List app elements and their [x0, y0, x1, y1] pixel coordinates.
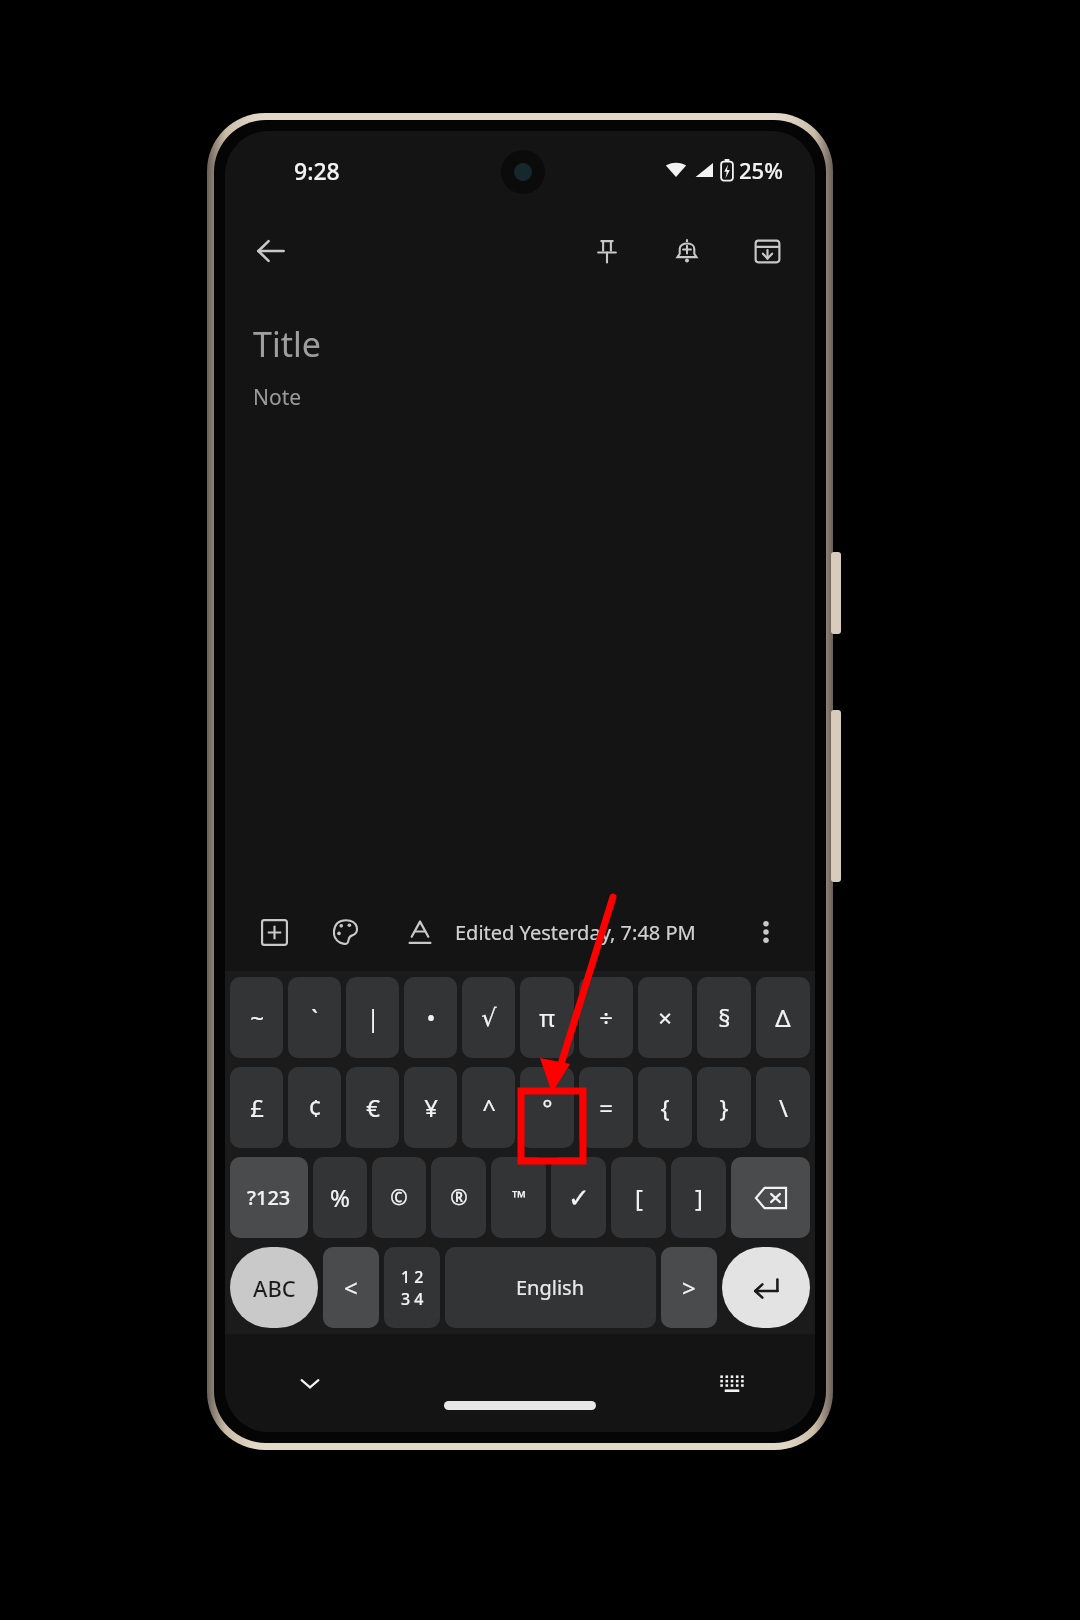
staticText: |	[366, 1001, 380, 1034]
button[interactable]: Colour	[319, 905, 373, 959]
staticText: ^	[482, 1091, 496, 1124]
button[interactable]: ¢	[288, 1067, 341, 1148]
button[interactable]: §	[697, 977, 751, 1058]
staticText: 9:28	[294, 155, 340, 186]
staticText: §	[718, 1001, 731, 1034]
button[interactable]: Formatting	[393, 905, 447, 959]
staticText: ?123	[247, 1184, 291, 1211]
staticText: =	[599, 1091, 613, 1124]
button[interactable]: More options	[739, 905, 793, 959]
staticText: ]	[695, 1181, 703, 1214]
button[interactable]: ™	[491, 1157, 546, 1238]
staticText: °	[542, 1091, 553, 1124]
staticText: ¢	[308, 1091, 322, 1124]
button[interactable]: 1 2	[384, 1247, 440, 1328]
button[interactable]: {	[638, 1067, 692, 1148]
button[interactable]: `	[288, 977, 341, 1058]
staticText: %	[330, 1181, 350, 1214]
button[interactable]: ABC	[230, 1247, 318, 1328]
button[interactable]: |	[346, 977, 399, 1058]
staticText: \	[779, 1091, 788, 1124]
staticText: ~	[250, 1001, 264, 1034]
button[interactable]: ¥	[404, 1067, 457, 1148]
button[interactable]: }	[697, 1067, 751, 1148]
button[interactable]: √	[462, 977, 515, 1058]
staticText: <	[344, 1271, 358, 1304]
button[interactable]: Backspace	[731, 1157, 810, 1238]
button[interactable]: Change keyboard	[707, 1358, 757, 1408]
button[interactable]: ©	[372, 1157, 426, 1238]
staticText: €	[366, 1091, 380, 1124]
staticText: [	[635, 1181, 643, 1214]
staticText: Edited Yesterday, 7:48 PM	[455, 919, 696, 946]
staticText: ¥	[424, 1091, 438, 1124]
button[interactable]: [	[611, 1157, 666, 1238]
button[interactable]: Next	[661, 1247, 717, 1328]
staticText: English	[516, 1274, 585, 1301]
button[interactable]: ×	[638, 977, 692, 1058]
staticText: •	[426, 1001, 436, 1034]
button[interactable]: •	[404, 977, 457, 1058]
button[interactable]: Add reminder	[659, 223, 715, 279]
button[interactable]: ✓	[551, 1157, 606, 1238]
button[interactable]: %	[313, 1157, 367, 1238]
staticText: ABC	[253, 1273, 296, 1303]
staticText: }	[719, 1091, 729, 1124]
button[interactable]: ^	[462, 1067, 515, 1148]
staticText: ÷	[599, 1001, 613, 1034]
staticText: ™	[512, 1185, 526, 1210]
button[interactable]: ®	[431, 1157, 486, 1238]
button[interactable]: π	[520, 977, 574, 1058]
staticText: {	[660, 1091, 670, 1124]
button[interactable]: Δ	[756, 977, 810, 1058]
button[interactable]: £	[230, 1067, 283, 1148]
button[interactable]: Previous	[323, 1247, 379, 1328]
staticText: Note	[253, 383, 302, 412]
button[interactable]: ÷	[579, 977, 633, 1058]
staticText: Title	[253, 321, 321, 367]
staticText: ®	[450, 1183, 468, 1212]
button[interactable]: Back	[243, 223, 299, 279]
button[interactable]: Archive	[739, 223, 795, 279]
button[interactable]: Enter	[722, 1247, 810, 1328]
staticText: ©	[390, 1183, 408, 1212]
button[interactable]: \	[756, 1067, 810, 1148]
staticText: Δ	[775, 1001, 791, 1034]
button[interactable]: Add	[247, 905, 301, 959]
button[interactable]: ~	[230, 977, 283, 1058]
staticText: >	[682, 1271, 696, 1304]
staticText: £	[250, 1091, 264, 1124]
staticText: 3 4	[401, 1288, 424, 1310]
button[interactable]: =	[579, 1067, 633, 1148]
button[interactable]: °	[520, 1067, 574, 1148]
staticText: 25%	[739, 155, 783, 185]
staticText: π	[539, 1001, 555, 1034]
button[interactable]: English	[445, 1247, 656, 1328]
button[interactable]: Pin	[579, 223, 635, 279]
button[interactable]: €	[346, 1067, 399, 1148]
button[interactable]: ]	[671, 1157, 726, 1238]
button[interactable]: Hide keyboard	[285, 1358, 335, 1408]
staticText: ✓	[568, 1183, 590, 1213]
staticText: `	[311, 1001, 318, 1034]
staticText: ×	[658, 1001, 672, 1034]
staticText: 1 2	[401, 1266, 424, 1288]
button[interactable]: ?123	[230, 1157, 308, 1238]
staticText: √	[481, 1004, 497, 1032]
